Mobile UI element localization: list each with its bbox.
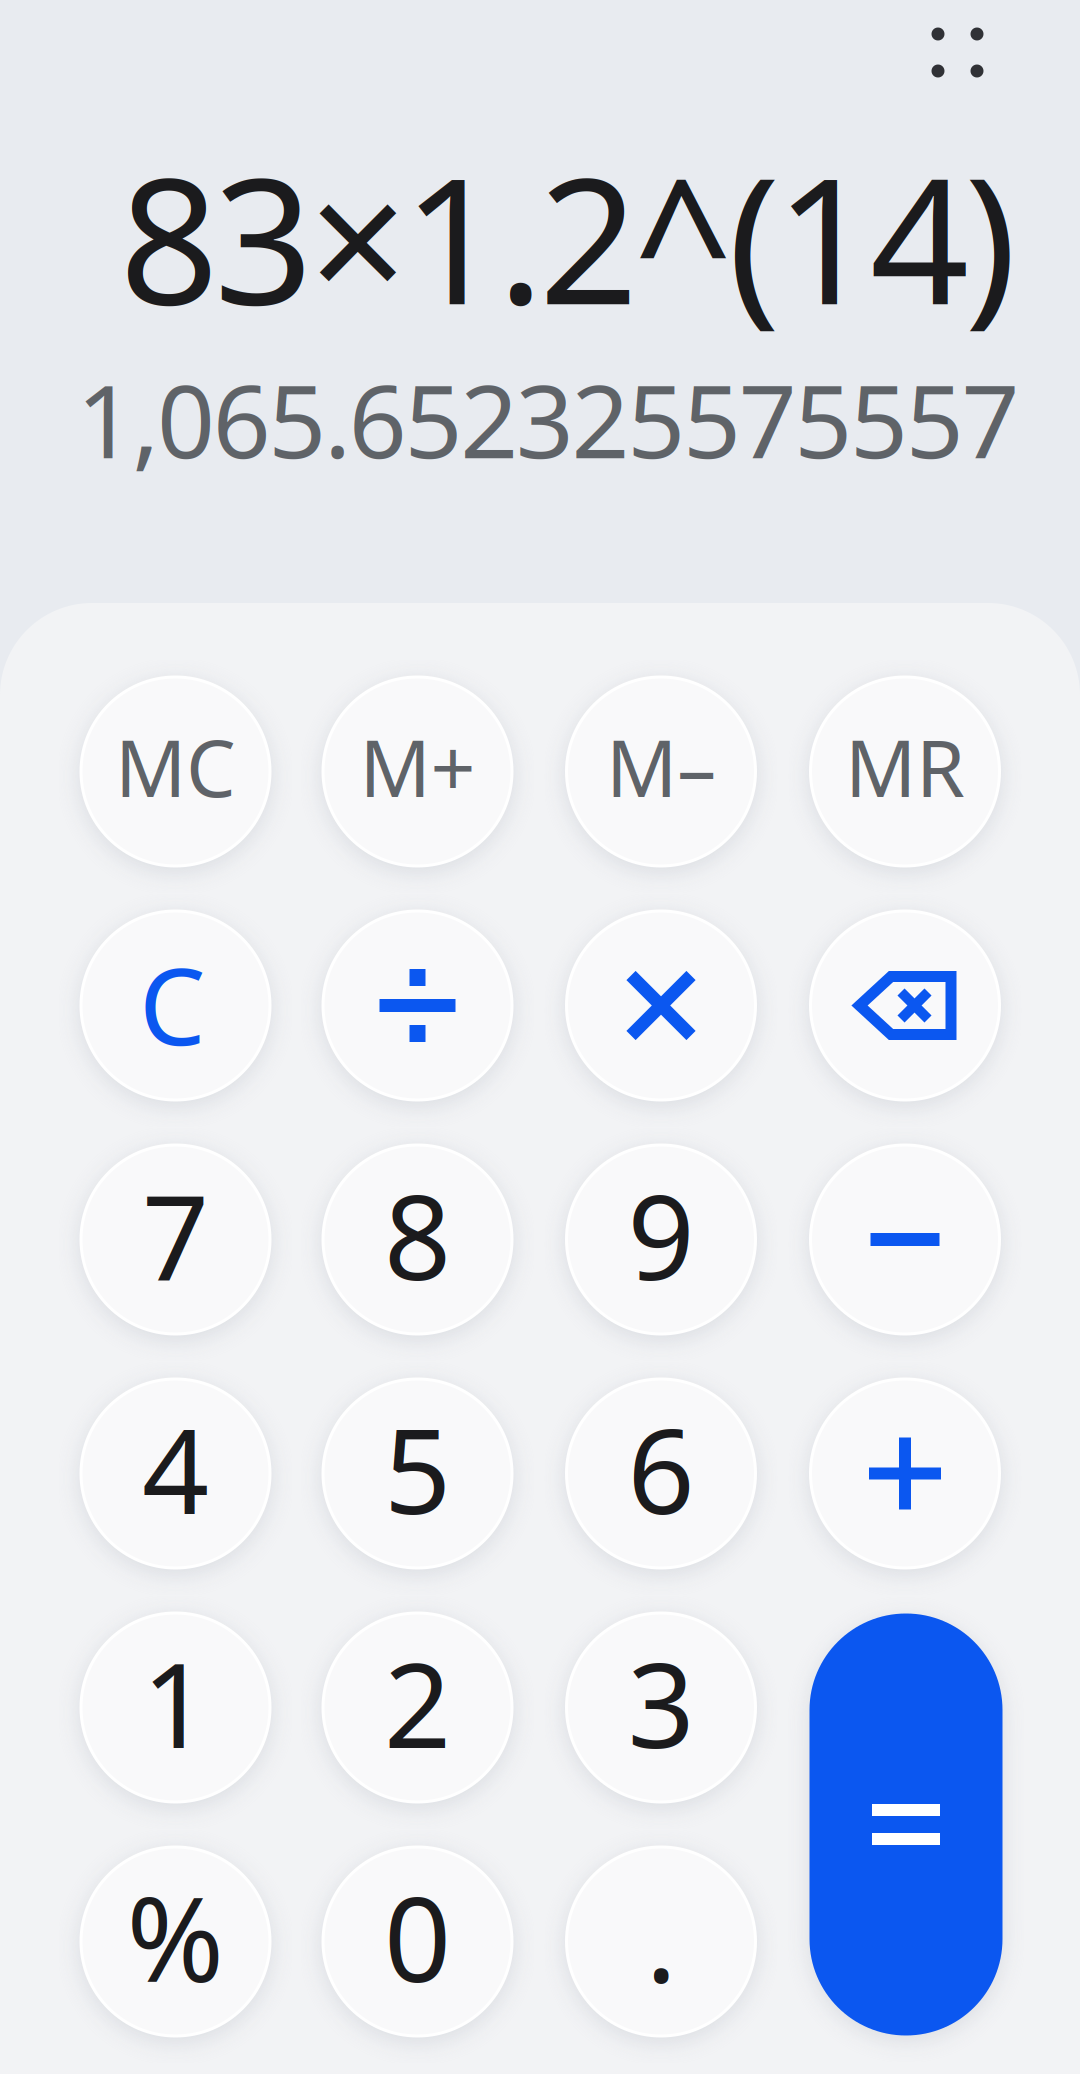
button[interactable]: Equals: [809, 1613, 1002, 2035]
staticText: .: [645, 1859, 676, 2014]
staticText: C: [139, 935, 206, 1074]
button[interactable]: 9: [566, 1145, 755, 1334]
button[interactable]: .: [566, 1847, 755, 2036]
button[interactable]: 7: [81, 1145, 270, 1334]
staticText: %: [126, 1859, 224, 2014]
button[interactable]: Multiply: [566, 911, 755, 1100]
button[interactable]: M+: [323, 677, 512, 866]
button[interactable]: Backspace: [810, 911, 999, 1100]
staticText: 9: [627, 1157, 694, 1312]
staticText: 83×1.2^(14): [119, 122, 1016, 352]
staticText: M+: [359, 714, 475, 819]
staticText: 4: [142, 1391, 209, 1546]
staticText: 7: [142, 1157, 209, 1312]
button[interactable]: 4: [81, 1379, 270, 1568]
button[interactable]: MC: [81, 677, 270, 866]
staticText: 6: [627, 1391, 694, 1546]
staticText: 1: [142, 1625, 209, 1780]
button[interactable]: %: [81, 1847, 270, 2036]
button[interactable]: 6: [566, 1379, 755, 1568]
button[interactable]: Plus: [810, 1379, 999, 1568]
staticText: M–: [606, 714, 716, 819]
button[interactable]: 3: [566, 1613, 755, 1802]
button[interactable]: Minus: [810, 1145, 999, 1334]
staticText: 2: [384, 1625, 451, 1780]
button[interactable]: 1: [81, 1613, 270, 1802]
staticText: 1,065.652325575557: [76, 352, 1019, 486]
staticText: MR: [845, 714, 965, 819]
staticText: 8: [384, 1157, 451, 1312]
staticText: 0: [384, 1859, 451, 2014]
staticText: 5: [384, 1391, 451, 1546]
button[interactable]: 8: [323, 1145, 512, 1334]
button[interactable]: More options: [905, 0, 1009, 104]
button[interactable]: 5: [323, 1379, 512, 1568]
button[interactable]: 0: [323, 1847, 512, 2036]
button[interactable]: C: [81, 911, 270, 1100]
staticText: 3: [627, 1625, 694, 1780]
button[interactable]: Divide: [323, 911, 512, 1100]
staticText: MC: [115, 714, 236, 819]
button[interactable]: 2: [323, 1613, 512, 1802]
button[interactable]: MR: [810, 677, 999, 866]
button[interactable]: M–: [566, 677, 755, 866]
